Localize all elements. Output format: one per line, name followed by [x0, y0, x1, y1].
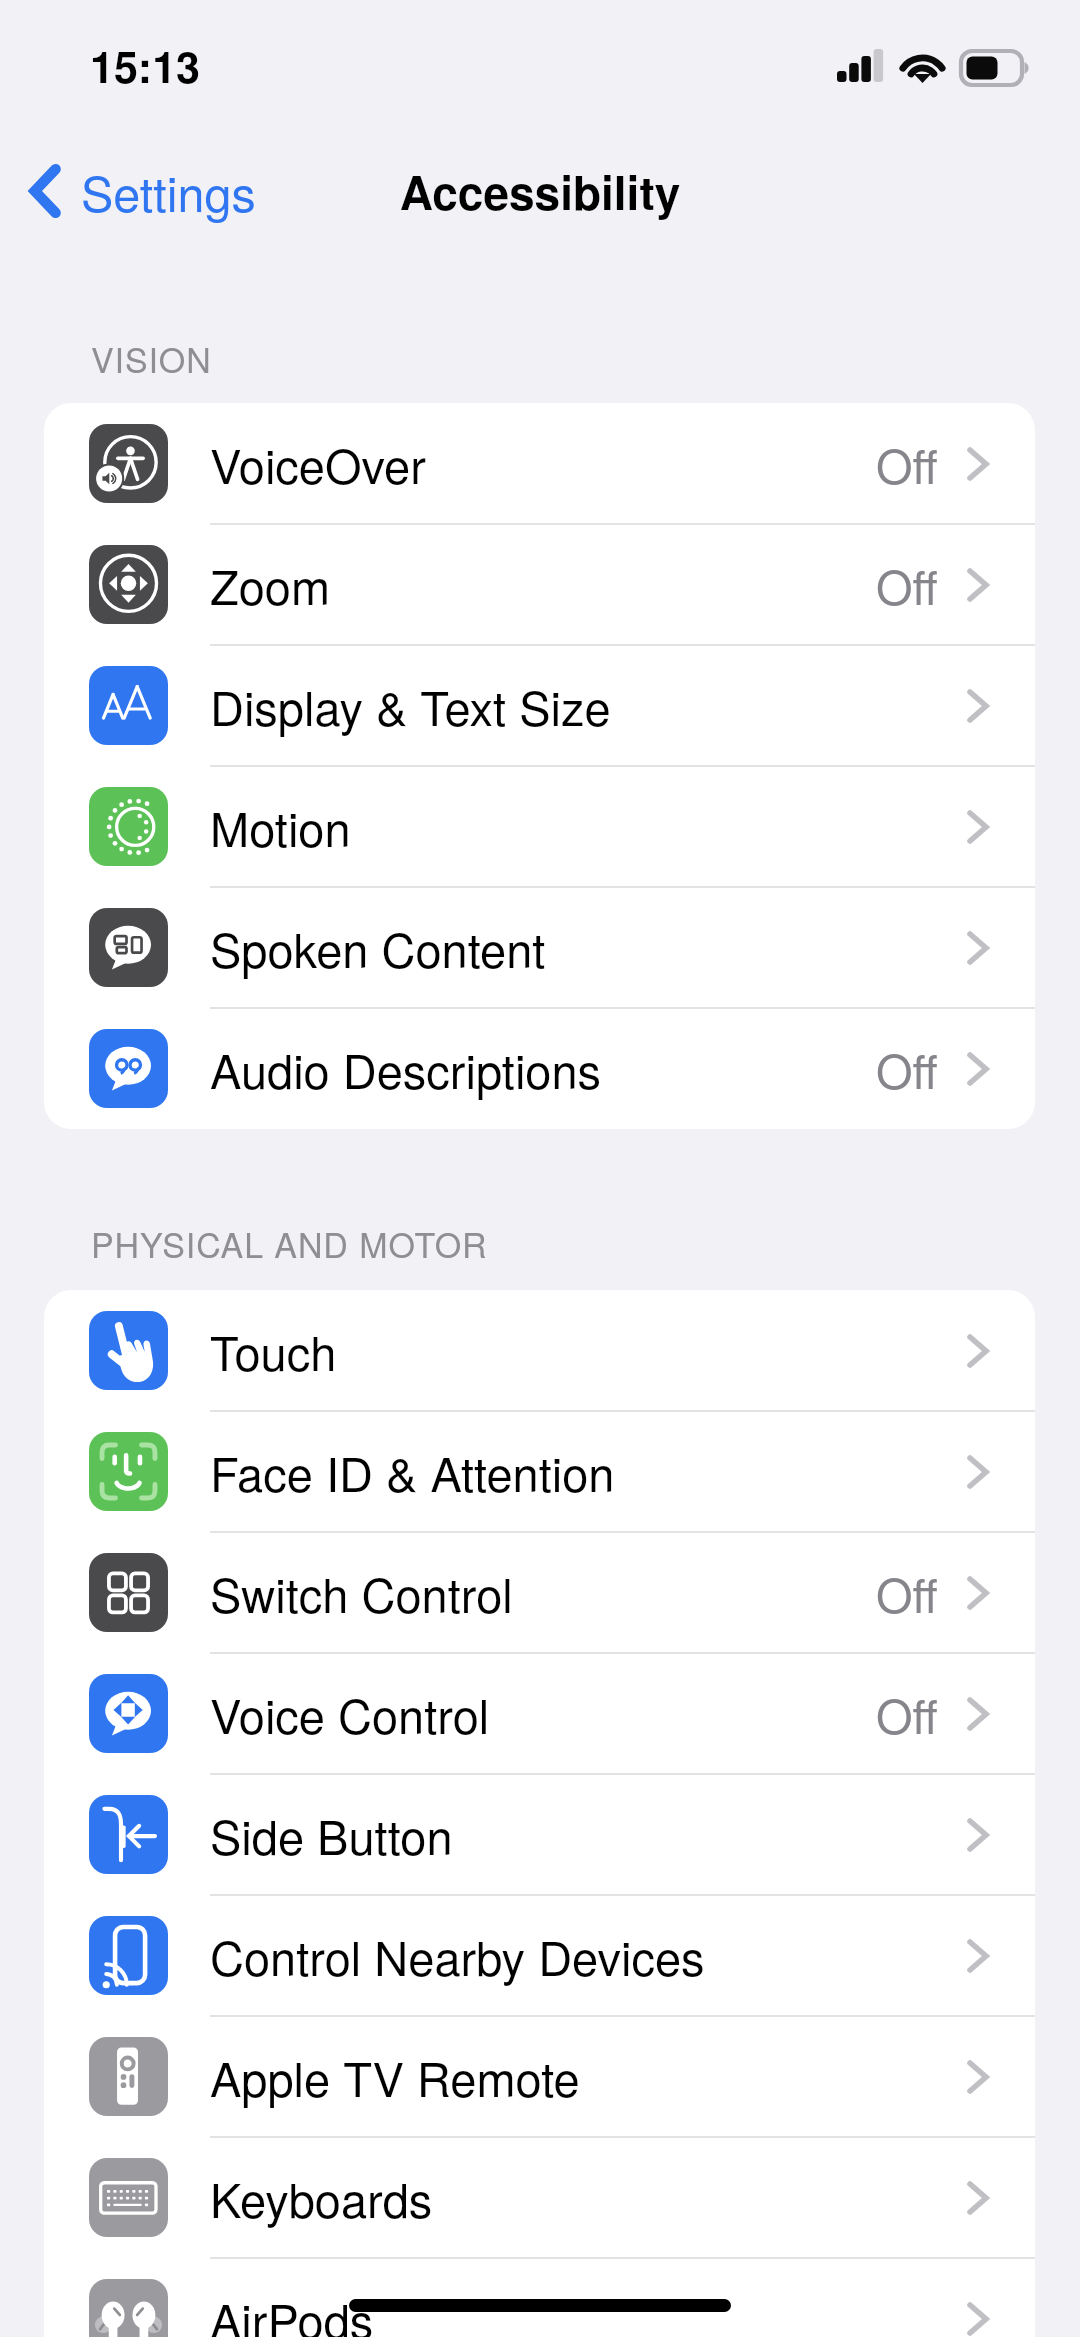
staticText: Keyboards: [210, 2164, 433, 2231]
staticText: Off: [876, 1680, 938, 1747]
staticText: Audio Descriptions: [210, 1035, 602, 1102]
staticText: Settings: [81, 156, 256, 225]
staticText: Accessibility: [0, 158, 1080, 224]
staticText: 15:13: [90, 35, 200, 97]
button[interactable]: Display & Text Size: [44, 645, 1035, 766]
button[interactable]: Zoom: [44, 524, 1035, 645]
staticText: Side Button: [210, 1801, 453, 1868]
staticText: Off: [876, 1035, 938, 1102]
staticText: AirPods: [210, 2285, 374, 2337]
button[interactable]: Control Nearby Devices: [44, 1895, 1035, 2016]
staticText: VoiceOver: [210, 430, 426, 497]
staticText: Off: [876, 1559, 938, 1626]
button[interactable]: Side Button: [44, 1774, 1035, 1895]
staticText: VISION: [91, 334, 212, 383]
staticText: Control Nearby Devices: [210, 1922, 705, 1989]
staticText: PHYSICAL AND MOTOR: [91, 1219, 488, 1268]
staticText: Motion: [210, 793, 351, 860]
button[interactable]: AirPods: [44, 2258, 1035, 2337]
staticText: Switch Control: [210, 1559, 513, 1626]
staticText: Touch: [210, 1317, 337, 1384]
button[interactable]: VoiceOver: [44, 403, 1035, 524]
button[interactable]: Face ID & Attention: [44, 1411, 1035, 1532]
button[interactable]: Audio Descriptions: [44, 1008, 1035, 1129]
button[interactable]: Voice Control: [44, 1653, 1035, 1774]
button[interactable]: Touch: [44, 1290, 1035, 1411]
staticText: Apple TV Remote: [210, 2043, 580, 2110]
staticText: Spoken Content: [210, 914, 546, 981]
button[interactable]: Motion: [44, 766, 1035, 887]
staticText: Voice Control: [210, 1680, 490, 1747]
staticText: Face ID & Attention: [210, 1438, 615, 1505]
staticText: Off: [876, 551, 938, 618]
staticText: Display & Text Size: [210, 672, 611, 739]
staticText: Off: [876, 430, 938, 497]
button[interactable]: Keyboards: [44, 2137, 1035, 2258]
button[interactable]: Spoken Content: [44, 887, 1035, 1008]
staticText: Zoom: [210, 551, 331, 618]
button[interactable]: Apple TV Remote: [44, 2016, 1035, 2137]
button[interactable]: Switch Control: [44, 1532, 1035, 1653]
button[interactable]: Back to Settings: [18, 150, 264, 231]
